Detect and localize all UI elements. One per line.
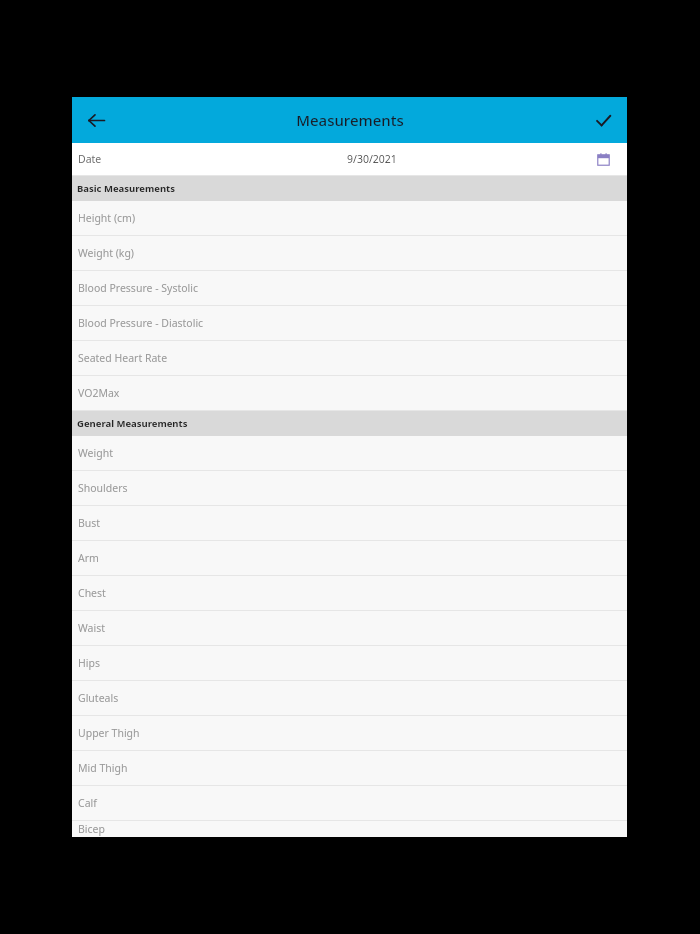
staticText: Calf [78, 796, 97, 810]
staticText: VO2Max [78, 386, 120, 400]
staticText: Bicep [78, 822, 105, 836]
staticText: General Measurements [77, 417, 188, 430]
button[interactable]: Back [78, 102, 114, 138]
button[interactable]: Upper Thigh [72, 716, 627, 751]
staticText: Shoulders [78, 481, 128, 495]
staticText: Weight [78, 446, 113, 460]
button[interactable]: Seated Heart Rate [72, 341, 627, 376]
button[interactable]: Arm [72, 541, 627, 576]
staticText: Hips [78, 656, 100, 670]
staticText: Waist [78, 621, 105, 635]
button[interactable]: Bicep [72, 821, 627, 837]
staticText: Weight (kg) [78, 246, 135, 260]
button[interactable]: Height (cm) [72, 201, 627, 236]
staticText: Mid Thigh [78, 761, 128, 775]
button[interactable]: Weight [72, 436, 627, 471]
staticText: Date [78, 152, 102, 166]
button[interactable]: Mid Thigh [72, 751, 627, 786]
staticText: Blood Pressure - Diastolic [78, 316, 204, 330]
staticText: Gluteals [78, 691, 119, 705]
button[interactable]: Blood Pressure - Systolic [72, 271, 627, 306]
button[interactable]: Bust [72, 506, 627, 541]
staticText: Height (cm) [78, 211, 136, 225]
button[interactable]: Gluteals [72, 681, 627, 716]
staticText: Upper Thigh [78, 726, 140, 740]
staticText: Blood Pressure - Systolic [78, 281, 199, 295]
button[interactable]: VO2Max [72, 376, 627, 411]
staticText: Seated Heart Rate [78, 351, 168, 365]
button[interactable]: Blood Pressure - Diastolic [72, 306, 627, 341]
staticText: Bust [78, 516, 101, 530]
button[interactable]: Save [585, 102, 621, 138]
staticText: Arm [78, 551, 99, 565]
button[interactable]: Chest [72, 576, 627, 611]
button[interactable]: Waist [72, 611, 627, 646]
staticText: Basic Measurements [77, 182, 175, 195]
button[interactable]: Weight (kg) [72, 236, 627, 271]
staticText: 9/30/2021 [347, 152, 397, 166]
staticText: Measurements [296, 110, 404, 130]
button[interactable]: Pick date [591, 147, 615, 171]
button[interactable]: Hips [72, 646, 627, 681]
staticText: Chest [78, 586, 106, 600]
button[interactable]: Shoulders [72, 471, 627, 506]
button[interactable]: Calf [72, 786, 627, 821]
button[interactable]: Date [72, 143, 627, 176]
